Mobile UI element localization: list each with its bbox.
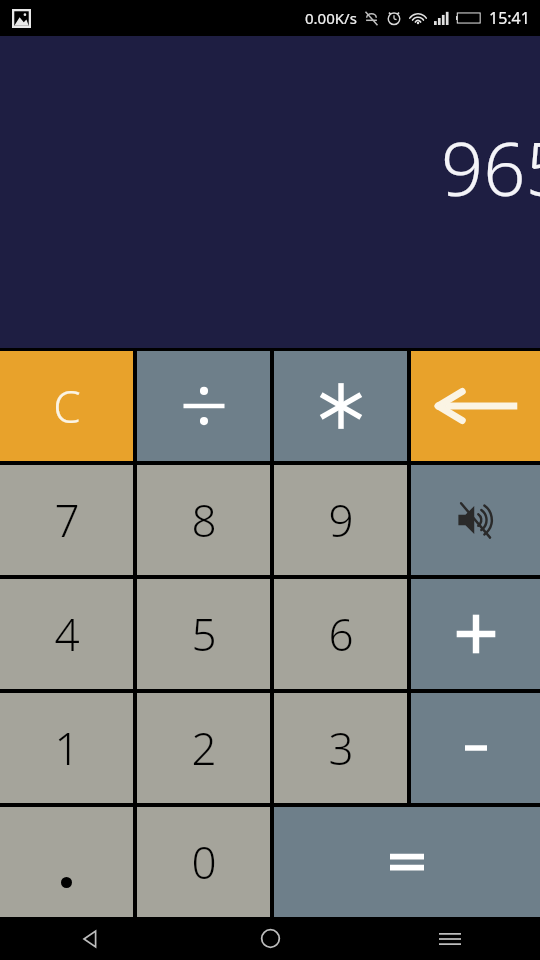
button[interactable]: Backspace (411, 351, 540, 461)
button[interactable]: Equals (274, 807, 540, 917)
staticText: 7 (54, 490, 80, 550)
button[interactable]: 0 (137, 807, 270, 917)
staticText: 9 (328, 490, 354, 550)
button[interactable]: 7 (0, 465, 133, 575)
button[interactable]: 4 (0, 579, 133, 689)
button[interactable]: Plus (411, 579, 540, 689)
staticText: 0.00K/s (305, 8, 357, 28)
button[interactable]: Back (0, 917, 180, 960)
staticText: 1 (54, 718, 80, 778)
button[interactable]: Multiply (274, 351, 407, 461)
button[interactable]: Mute (411, 465, 540, 575)
staticText: 965 (441, 117, 540, 218)
staticText: 0 (191, 832, 217, 892)
button[interactable]: Recent apps (360, 917, 540, 960)
button[interactable]: 3 (274, 693, 407, 803)
button[interactable]: 9 (274, 465, 407, 575)
staticText: C (53, 376, 81, 436)
staticText: 5 (191, 604, 217, 664)
staticText: 3 (328, 718, 354, 778)
staticText: 4 (54, 604, 80, 664)
button[interactable]: Home (180, 917, 360, 960)
staticText: 6 (328, 604, 354, 664)
button[interactable]: 5 (137, 579, 270, 689)
button[interactable]: 2 (137, 693, 270, 803)
button[interactable]: C (0, 351, 133, 461)
button[interactable]: Minus (411, 693, 540, 803)
button[interactable]: Divide (137, 351, 270, 461)
staticText: 2 (191, 718, 217, 778)
staticText: 8 (191, 490, 217, 550)
button[interactable] (0, 807, 133, 917)
button[interactable]: 1 (0, 693, 133, 803)
staticText: 15:41 (489, 7, 530, 29)
button[interactable]: 8 (137, 465, 270, 575)
button[interactable]: 6 (274, 579, 407, 689)
